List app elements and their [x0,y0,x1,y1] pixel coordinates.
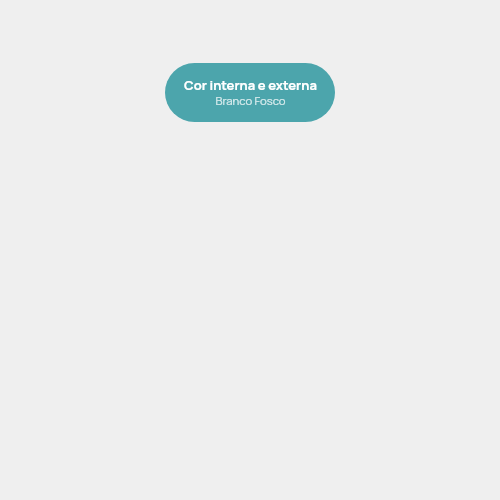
button[interactable]: Cor interna e externa [165,63,335,122]
staticText: Branco Fosco [215,94,286,108]
staticText: Cor interna e externa [184,78,317,94]
